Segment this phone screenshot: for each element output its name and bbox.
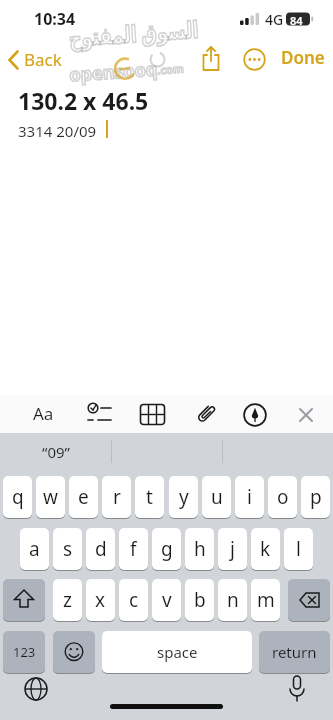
staticText: 10:34	[34, 8, 76, 30]
button[interactable]	[24, 677, 48, 701]
button[interactable]: n	[218, 579, 247, 621]
staticText: 3314 20/09	[18, 121, 97, 141]
staticText: 123	[13, 643, 36, 661]
staticText: x	[95, 587, 106, 613]
button[interactable]: b	[185, 579, 214, 621]
button[interactable]	[288, 579, 330, 621]
staticText: السوق المفتوح	[68, 12, 200, 53]
staticText: i	[247, 484, 252, 510]
button[interactable]: “09”	[0, 433, 111, 470]
button[interactable]: k	[251, 528, 280, 570]
button[interactable]: q	[3, 476, 32, 518]
staticText: Done	[281, 46, 325, 69]
staticText: “09”	[42, 442, 70, 462]
button[interactable]: s	[53, 528, 82, 570]
staticText: a	[29, 536, 40, 562]
button[interactable]: v	[152, 579, 181, 621]
button[interactable]	[85, 400, 115, 428]
staticText: r	[113, 484, 121, 510]
staticText: w	[43, 484, 58, 510]
button[interactable]: p	[301, 476, 330, 518]
button[interactable]	[53, 631, 95, 673]
staticText: f	[130, 536, 137, 562]
button[interactable]: Aa	[26, 399, 62, 429]
button[interactable]: z	[53, 579, 82, 621]
button[interactable]: r	[102, 476, 131, 518]
button[interactable]: return	[259, 631, 330, 673]
staticText: j	[230, 536, 235, 562]
staticText: o	[277, 484, 289, 510]
staticText: return	[272, 642, 317, 662]
button[interactable]	[243, 48, 266, 71]
button[interactable]	[3, 579, 45, 621]
staticText: 4G	[265, 10, 284, 29]
button[interactable]: a	[20, 528, 49, 570]
button[interactable]: e	[69, 476, 98, 518]
button[interactable]: 123	[3, 631, 45, 673]
button[interactable]: g	[152, 528, 181, 570]
button[interactable]	[192, 400, 220, 428]
staticText: Back	[24, 48, 62, 71]
button[interactable]: x	[86, 579, 115, 621]
button[interactable]: i	[235, 476, 264, 518]
button[interactable]: w	[36, 476, 65, 518]
staticText: 84	[290, 13, 303, 28]
button[interactable]: u	[202, 476, 231, 518]
button[interactable]: h	[185, 528, 214, 570]
staticText: m	[257, 587, 275, 613]
staticText: opensooq	[68, 56, 158, 88]
staticText: l	[296, 536, 301, 562]
staticText: space	[157, 642, 198, 662]
button[interactable]: c	[119, 579, 148, 621]
staticText: n	[227, 587, 239, 613]
staticText: s	[63, 536, 73, 562]
button[interactable]: l	[284, 528, 313, 570]
button[interactable]	[198, 44, 224, 74]
staticText: u	[211, 484, 223, 510]
staticText: q	[12, 484, 24, 510]
staticText: b	[194, 587, 206, 613]
staticText: Aa	[33, 402, 54, 425]
button[interactable]: j	[218, 528, 247, 570]
button[interactable]: o	[268, 476, 297, 518]
button[interactable]: d	[86, 528, 115, 570]
button[interactable]	[294, 403, 318, 427]
staticText: g	[161, 536, 173, 562]
staticText: k	[260, 536, 271, 562]
button[interactable]: y	[169, 476, 198, 518]
staticText: h	[194, 536, 206, 562]
button[interactable]: t	[135, 476, 164, 518]
staticText: .com	[157, 61, 185, 77]
button[interactable]	[139, 402, 167, 428]
staticText: y	[179, 484, 189, 510]
button[interactable]	[242, 402, 268, 428]
staticText: 130.2 x 46.5	[18, 85, 149, 116]
staticText: t	[146, 484, 153, 510]
staticText: d	[95, 536, 107, 562]
button[interactable]: Back	[4, 46, 74, 74]
staticText: p	[310, 484, 322, 510]
button[interactable]: space	[102, 631, 252, 673]
button[interactable]: Done	[281, 46, 329, 72]
staticText: v	[162, 587, 172, 613]
staticText: z	[63, 587, 72, 613]
button[interactable]	[285, 674, 309, 704]
button[interactable]: m	[251, 579, 280, 621]
staticText: c	[129, 587, 139, 613]
staticText: e	[78, 484, 89, 510]
button[interactable]: f	[119, 528, 148, 570]
